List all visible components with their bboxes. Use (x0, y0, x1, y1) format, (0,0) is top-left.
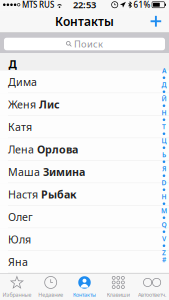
button[interactable]: Контакты (68, 274, 101, 300)
button[interactable]: Лена (0, 138, 169, 161)
staticText: Поиск (74, 38, 103, 50)
staticText: Дима (8, 75, 37, 89)
staticText: Контакты (73, 291, 96, 298)
staticText: D (161, 178, 166, 187)
staticText: Ц (161, 136, 166, 145)
staticText: Клавиши (107, 291, 130, 298)
staticText: Автоответч. (138, 291, 166, 298)
staticText: Т (162, 122, 166, 131)
staticText: Я (162, 164, 166, 173)
staticText: Олег (8, 210, 33, 224)
button[interactable]: Автоответч. (135, 274, 169, 300)
staticText: # (162, 255, 166, 264)
staticText: Н (161, 108, 166, 117)
staticText: Орлова (34, 142, 78, 156)
staticText: M (161, 206, 167, 215)
button[interactable]: Add contact (144, 11, 169, 32)
staticText: Зимина (40, 165, 85, 179)
staticText: A (162, 66, 166, 75)
button[interactable]: Маша (0, 161, 169, 183)
staticText: Д (161, 80, 166, 89)
staticText: Недавние (38, 291, 63, 298)
staticText: Контакты (55, 13, 114, 29)
button[interactable]: Поиск (0, 33, 169, 53)
button[interactable]: Катя (0, 116, 169, 138)
staticText: H (161, 192, 166, 201)
button[interactable]: Юля (0, 228, 169, 251)
staticText: Й (161, 94, 166, 103)
staticText: Настя (8, 187, 38, 201)
staticText: V (162, 234, 166, 243)
staticText: Женя (8, 97, 36, 111)
button[interactable]: Женя (0, 93, 169, 116)
button[interactable]: Олег (0, 206, 169, 228)
button[interactable]: Клавиши (101, 274, 135, 300)
staticText: Рыбак (38, 187, 77, 201)
button[interactable]: Яна (0, 251, 169, 273)
staticText: 22:53 (73, 0, 96, 11)
staticText: MTS RUS (22, 0, 54, 10)
staticText: Лис (36, 97, 60, 111)
staticText: Юля (8, 232, 31, 246)
staticText: Q (161, 220, 166, 229)
button[interactable]: Настя (0, 183, 169, 206)
staticText: 61% (133, 0, 150, 10)
staticText: Лена (8, 142, 34, 156)
button[interactable]: Дима (0, 71, 169, 93)
staticText: Z (162, 248, 166, 257)
staticText: Д (8, 57, 16, 71)
button[interactable]: Недавние (34, 274, 68, 300)
staticText: Ь (162, 150, 166, 159)
staticText: Яна (8, 255, 28, 269)
button[interactable]: Избранные (0, 274, 34, 300)
staticText: Маша (8, 165, 40, 179)
staticText: Катя (8, 120, 32, 134)
staticText: Избранные (2, 291, 31, 298)
